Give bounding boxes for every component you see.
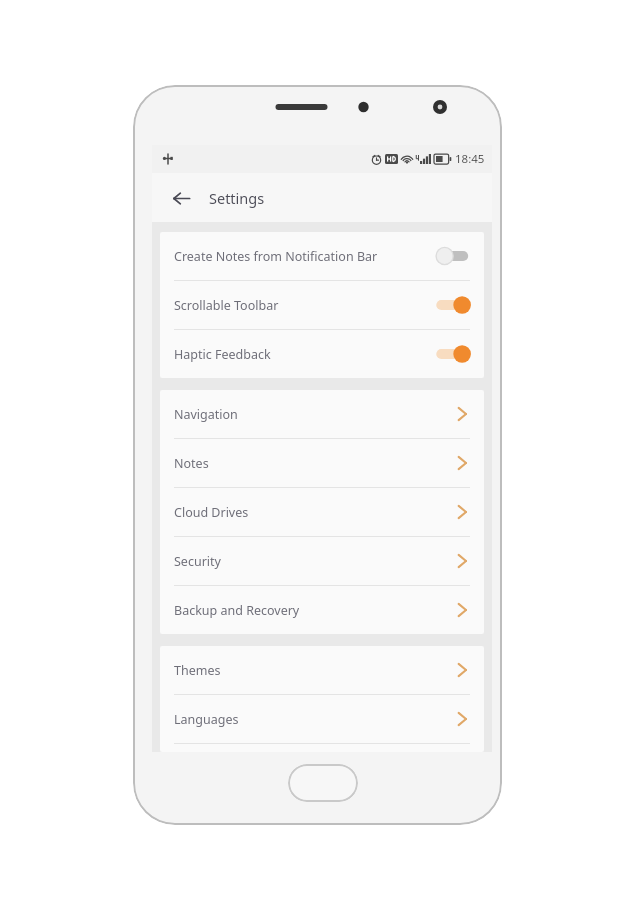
button[interactable]: Scrollable Toolbar bbox=[160, 281, 484, 329]
button[interactable]: Notes bbox=[160, 439, 484, 487]
staticText: Notes bbox=[174, 455, 457, 472]
button[interactable]: Navigation bbox=[160, 390, 484, 438]
staticText: Haptic Feedback bbox=[174, 346, 434, 363]
staticText: Cloud Drives bbox=[174, 504, 457, 521]
button[interactable]: Cloud Drives bbox=[160, 488, 484, 536]
other: Home bbox=[288, 764, 358, 802]
staticText: Settings bbox=[209, 188, 265, 208]
button[interactable]: Haptic Feedback bbox=[160, 330, 484, 378]
staticText: 18:45 bbox=[455, 151, 485, 167]
staticText: Languages bbox=[174, 711, 457, 728]
button[interactable]: Backup and Recovery bbox=[160, 586, 484, 634]
button[interactable]: Themes bbox=[160, 646, 484, 694]
button[interactable]: Security bbox=[160, 537, 484, 585]
button[interactable]: Back bbox=[164, 181, 198, 215]
staticText: Navigation bbox=[174, 406, 457, 423]
staticText: Create Notes from Notification Bar bbox=[174, 248, 434, 265]
staticText: Themes bbox=[174, 662, 457, 679]
button[interactable]: Create Notes from Notification Bar bbox=[160, 232, 484, 280]
staticText: Scrollable Toolbar bbox=[174, 297, 434, 314]
button[interactable]: Languages bbox=[160, 695, 484, 743]
staticText: Backup and Recovery bbox=[174, 602, 457, 619]
staticText: Security bbox=[174, 553, 457, 570]
